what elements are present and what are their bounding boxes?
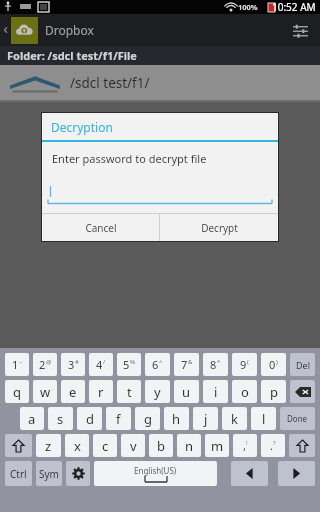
staticText: e [69,383,77,401]
button[interactable]: 5 [117,353,141,376]
button[interactable]: Settings [280,14,320,46]
staticText: Enter password to decrypt file [52,151,207,166]
staticText: 10:52 AM [272,0,316,14]
button[interactable]: f [106,407,131,430]
staticText: @ [46,358,52,366]
button[interactable]: w [33,380,57,403]
button[interactable]: s [48,407,73,430]
staticText: h [172,410,181,428]
staticText: /sdcl test/f1/ [70,74,150,92]
button[interactable]: 8 [203,353,228,376]
button[interactable]: Sym [36,461,62,486]
button[interactable]: j [193,407,218,430]
button[interactable] [290,380,315,403]
button[interactable]: Del [290,353,315,376]
button[interactable]: p [261,380,286,403]
staticText: 100% [238,2,258,12]
staticText: % [130,358,135,366]
button[interactable] [66,461,90,486]
staticText: j [204,410,208,428]
staticText: 4 [96,357,103,372]
staticText: 5 [123,357,130,372]
button[interactable]: e [61,380,85,403]
staticText: b [157,437,165,455]
staticText: a [28,410,36,428]
button[interactable]: 4 [89,353,113,376]
button[interactable]: Done [280,407,315,430]
button[interactable]: 6 [145,353,170,376]
button[interactable]: n [177,434,201,457]
button[interactable] [231,461,268,486]
button[interactable]: t [117,380,141,403]
button[interactable]: d [77,407,102,430]
staticText: ^ [159,358,163,366]
button[interactable] [48,183,272,205]
button[interactable]: u [174,380,199,403]
staticText: w [40,383,51,401]
button[interactable]: r [89,380,113,403]
button[interactable]: g [135,407,160,430]
staticText: 2 [39,357,46,372]
staticText: Sym [39,467,59,481]
button[interactable]: h [164,407,189,430]
staticText: Decrypt [201,221,238,235]
button[interactable]: c [93,434,117,457]
staticText: l [262,410,266,428]
button[interactable]: b [149,434,173,457]
staticText: English(US) [134,465,177,476]
staticText: z [45,437,52,455]
staticText: p [270,383,278,401]
button[interactable]: m [205,434,229,457]
button[interactable]: k [222,407,247,430]
staticText: ! [246,439,248,447]
staticText: ? [273,439,276,447]
staticText: Del [296,359,310,371]
staticText: s [57,410,64,428]
button[interactable]: Decrypt [160,214,278,241]
button[interactable]: x [65,434,89,457]
staticText: 7 [181,357,188,372]
button[interactable]: . [261,434,285,457]
staticText: x [74,437,81,455]
staticText: i [214,383,218,401]
button[interactable]: , [233,434,257,457]
button[interactable]: 7 [174,353,199,376]
staticText: / [103,358,106,366]
button[interactable]: 1 [5,353,29,376]
staticText: # [75,358,79,366]
button[interactable]: a [20,407,44,430]
button[interactable]: o [232,380,257,403]
button[interactable]: v [121,434,145,457]
staticText: m [211,437,224,455]
button[interactable]: 9 [232,353,257,376]
staticText: 0 [269,357,276,372]
button[interactable]: z [36,434,61,457]
button[interactable]: Back [0,14,11,46]
button[interactable]: Dropbox [11,14,280,46]
button[interactable]: 2 [33,353,57,376]
staticText: 9 [240,357,247,372]
button[interactable]: 0 [261,353,286,376]
staticText: ) [276,358,278,366]
staticText: Folder: /sdcl test/f1/File [7,48,137,63]
button[interactable]: English(US) [94,461,217,486]
staticText: & [188,358,193,366]
button[interactable] [289,434,315,457]
button[interactable]: Cancel [42,214,159,241]
button[interactable]: /sdcl test/f1/ [0,65,320,100]
button[interactable]: i [203,380,228,403]
staticText: * [217,358,221,366]
staticText: k [231,410,238,428]
button[interactable]: l [251,407,276,430]
button[interactable]: 3 [61,353,85,376]
button[interactable]: Ctrl [5,461,32,486]
button[interactable] [5,434,32,457]
button[interactable] [278,461,315,486]
button[interactable]: y [145,380,170,403]
staticText: g [144,410,152,428]
staticText: , [243,438,246,453]
staticText: 6 [152,357,159,372]
staticText: ~ [19,358,23,366]
button[interactable]: q [5,380,29,403]
staticText: Dropbox [45,22,94,38]
